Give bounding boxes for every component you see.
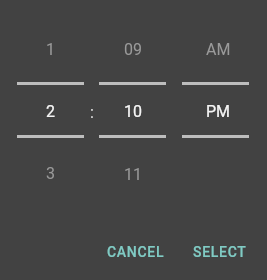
- staticText: CANCEL: [107, 244, 165, 260]
- button[interactable]: 2: [17, 86, 83, 136]
- staticText: PM: [206, 102, 231, 121]
- button[interactable]: 10: [100, 86, 166, 136]
- button[interactable]: CANCEL: [98, 234, 174, 270]
- staticText: 1: [46, 40, 55, 59]
- button[interactable]: SELECT: [184, 234, 256, 270]
- staticText: 10: [124, 102, 142, 121]
- staticText: 2: [46, 102, 55, 121]
- staticText: 09: [124, 40, 142, 59]
- button[interactable]: PM: [185, 86, 251, 136]
- staticText: :: [90, 103, 94, 122]
- staticText: 3: [46, 164, 55, 183]
- staticText: AM: [206, 40, 231, 59]
- staticText: 11: [124, 165, 142, 184]
- staticText: SELECT: [193, 244, 247, 260]
